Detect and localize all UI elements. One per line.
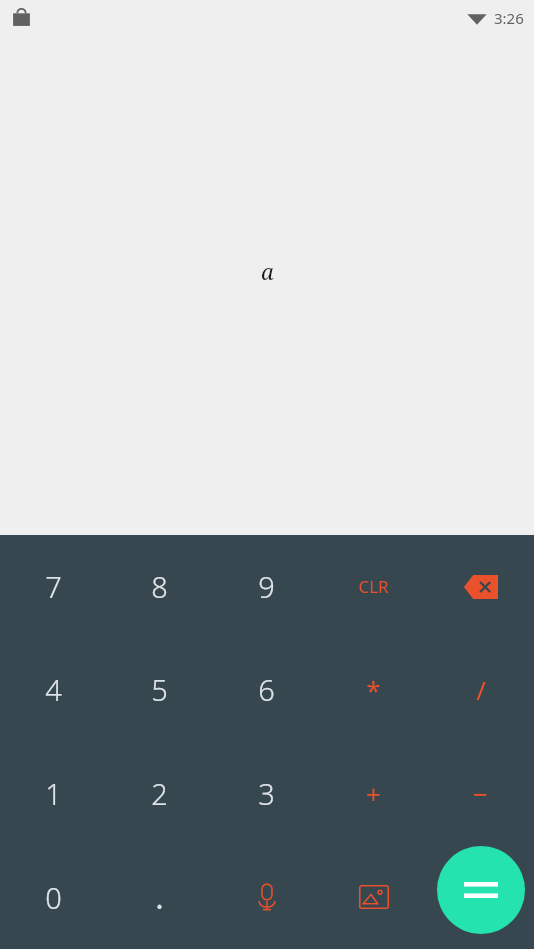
staticText: CLR <box>358 575 389 598</box>
button[interactable]: 1 <box>0 741 106 845</box>
button[interactable]: 9 <box>213 535 320 638</box>
button[interactable]: 8 <box>106 535 213 638</box>
staticText: 8 <box>151 567 168 606</box>
staticText: . <box>155 877 164 918</box>
button[interactable]: . <box>106 845 213 949</box>
staticText: 6 <box>258 670 275 709</box>
button[interactable]: CLR <box>320 535 427 638</box>
button[interactable]: Equals <box>437 846 525 934</box>
button[interactable]: 6 <box>213 638 320 741</box>
staticText: / <box>476 672 486 707</box>
staticText: 7 <box>45 567 62 606</box>
button[interactable]: − <box>427 741 534 845</box>
button[interactable]: 4 <box>0 638 106 741</box>
button[interactable]: Backspace <box>427 535 534 638</box>
staticText: − <box>473 776 488 811</box>
button[interactable]: 3 <box>213 741 320 845</box>
staticText: 5 <box>151 670 168 709</box>
staticText: * <box>366 672 381 707</box>
staticText: a <box>261 256 274 286</box>
button[interactable]: 2 <box>106 741 213 845</box>
staticText: 4 <box>45 670 62 709</box>
button[interactable]: 7 <box>0 535 106 638</box>
button[interactable]: / <box>427 638 534 741</box>
staticText: 9 <box>258 567 275 606</box>
button[interactable]: * <box>320 638 427 741</box>
staticText: 3:26 <box>494 8 524 28</box>
staticText: + <box>366 776 381 811</box>
staticText: 2 <box>151 774 168 813</box>
staticText: 1 <box>45 774 62 813</box>
staticText: 0 <box>45 878 62 917</box>
button[interactable]: Voice input <box>213 845 320 949</box>
staticText: 3 <box>258 774 275 813</box>
button[interactable]: 5 <box>106 638 213 741</box>
button[interactable]: Insert image <box>320 845 427 949</box>
button[interactable]: + <box>320 741 427 845</box>
button[interactable]: 0 <box>0 845 106 949</box>
